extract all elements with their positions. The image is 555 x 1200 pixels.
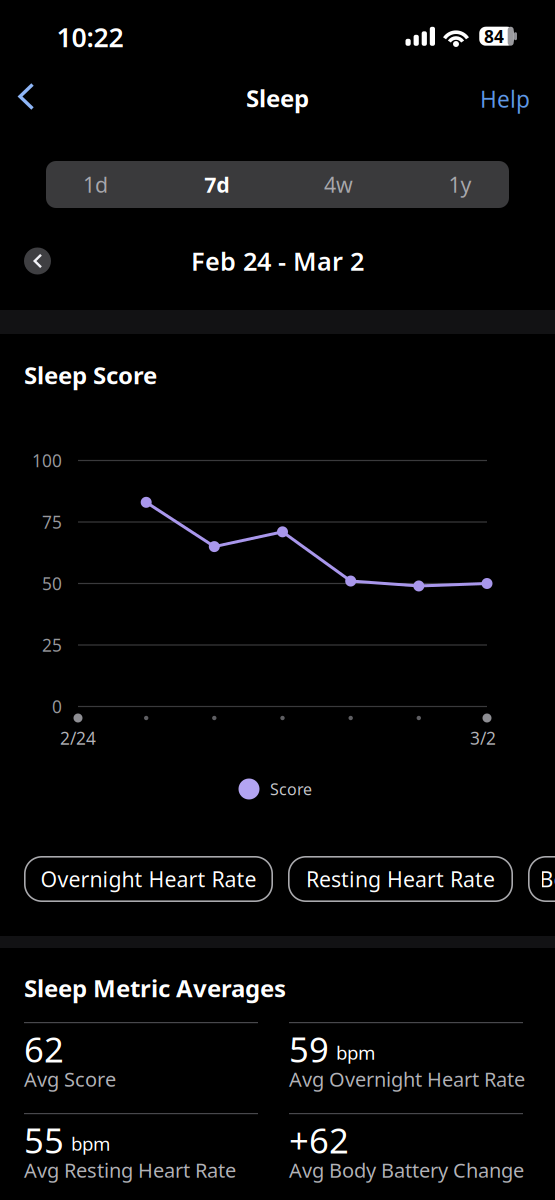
staticText: Avg Body Battery Change [289,1157,524,1183]
staticText: 7d [204,170,229,199]
staticText: Feb 24 - Mar 2 [191,244,364,278]
staticText: Sleep [246,82,309,114]
staticText: Avg Resting Heart Rate [24,1157,236,1183]
staticText: 100 [32,449,62,472]
button[interactable]: Resting Heart Rate [288,856,513,902]
staticText: bpm [71,1131,110,1156]
staticText: Sleep Score [24,359,157,391]
staticText: 1y [448,170,471,199]
staticText: 3/2 [470,726,496,749]
staticText: 55 [24,1117,64,1163]
button[interactable]: 1y [403,161,517,207]
staticText: 1d [83,170,108,199]
button[interactable]: 4w [281,161,395,207]
staticText: 2/24 [60,726,96,749]
staticText: Sleep Metric Averages [24,972,286,1004]
staticText: 10:22 [56,19,123,55]
button[interactable]: Help [480,84,530,114]
button[interactable] [13,82,39,110]
staticText: Resting Heart Rate [306,865,495,893]
button[interactable]: Overnight Heart Rate [24,856,273,902]
button[interactable]: 7d [160,161,274,207]
staticText: Help [480,84,530,114]
staticText: 59 [289,1026,329,1072]
staticText: Body Battery [539,865,555,893]
staticText: bpm [336,1040,375,1065]
staticText: +62 [289,1117,349,1163]
staticText: Avg Score [24,1066,116,1092]
staticText: 0 [52,695,62,718]
staticText: 4w [324,170,353,199]
staticText: 62 [24,1026,64,1072]
staticText: 25 [42,633,62,656]
staticText: 84 [484,25,504,48]
staticText: Score [270,778,312,800]
button[interactable] [24,247,51,274]
staticText: 50 [42,572,62,595]
button[interactable]: 1d [38,161,152,207]
button[interactable]: Body Battery [528,856,555,902]
staticText: Avg Overnight Heart Rate [289,1066,525,1092]
staticText: 75 [42,510,62,533]
staticText: Overnight Heart Rate [40,865,256,893]
